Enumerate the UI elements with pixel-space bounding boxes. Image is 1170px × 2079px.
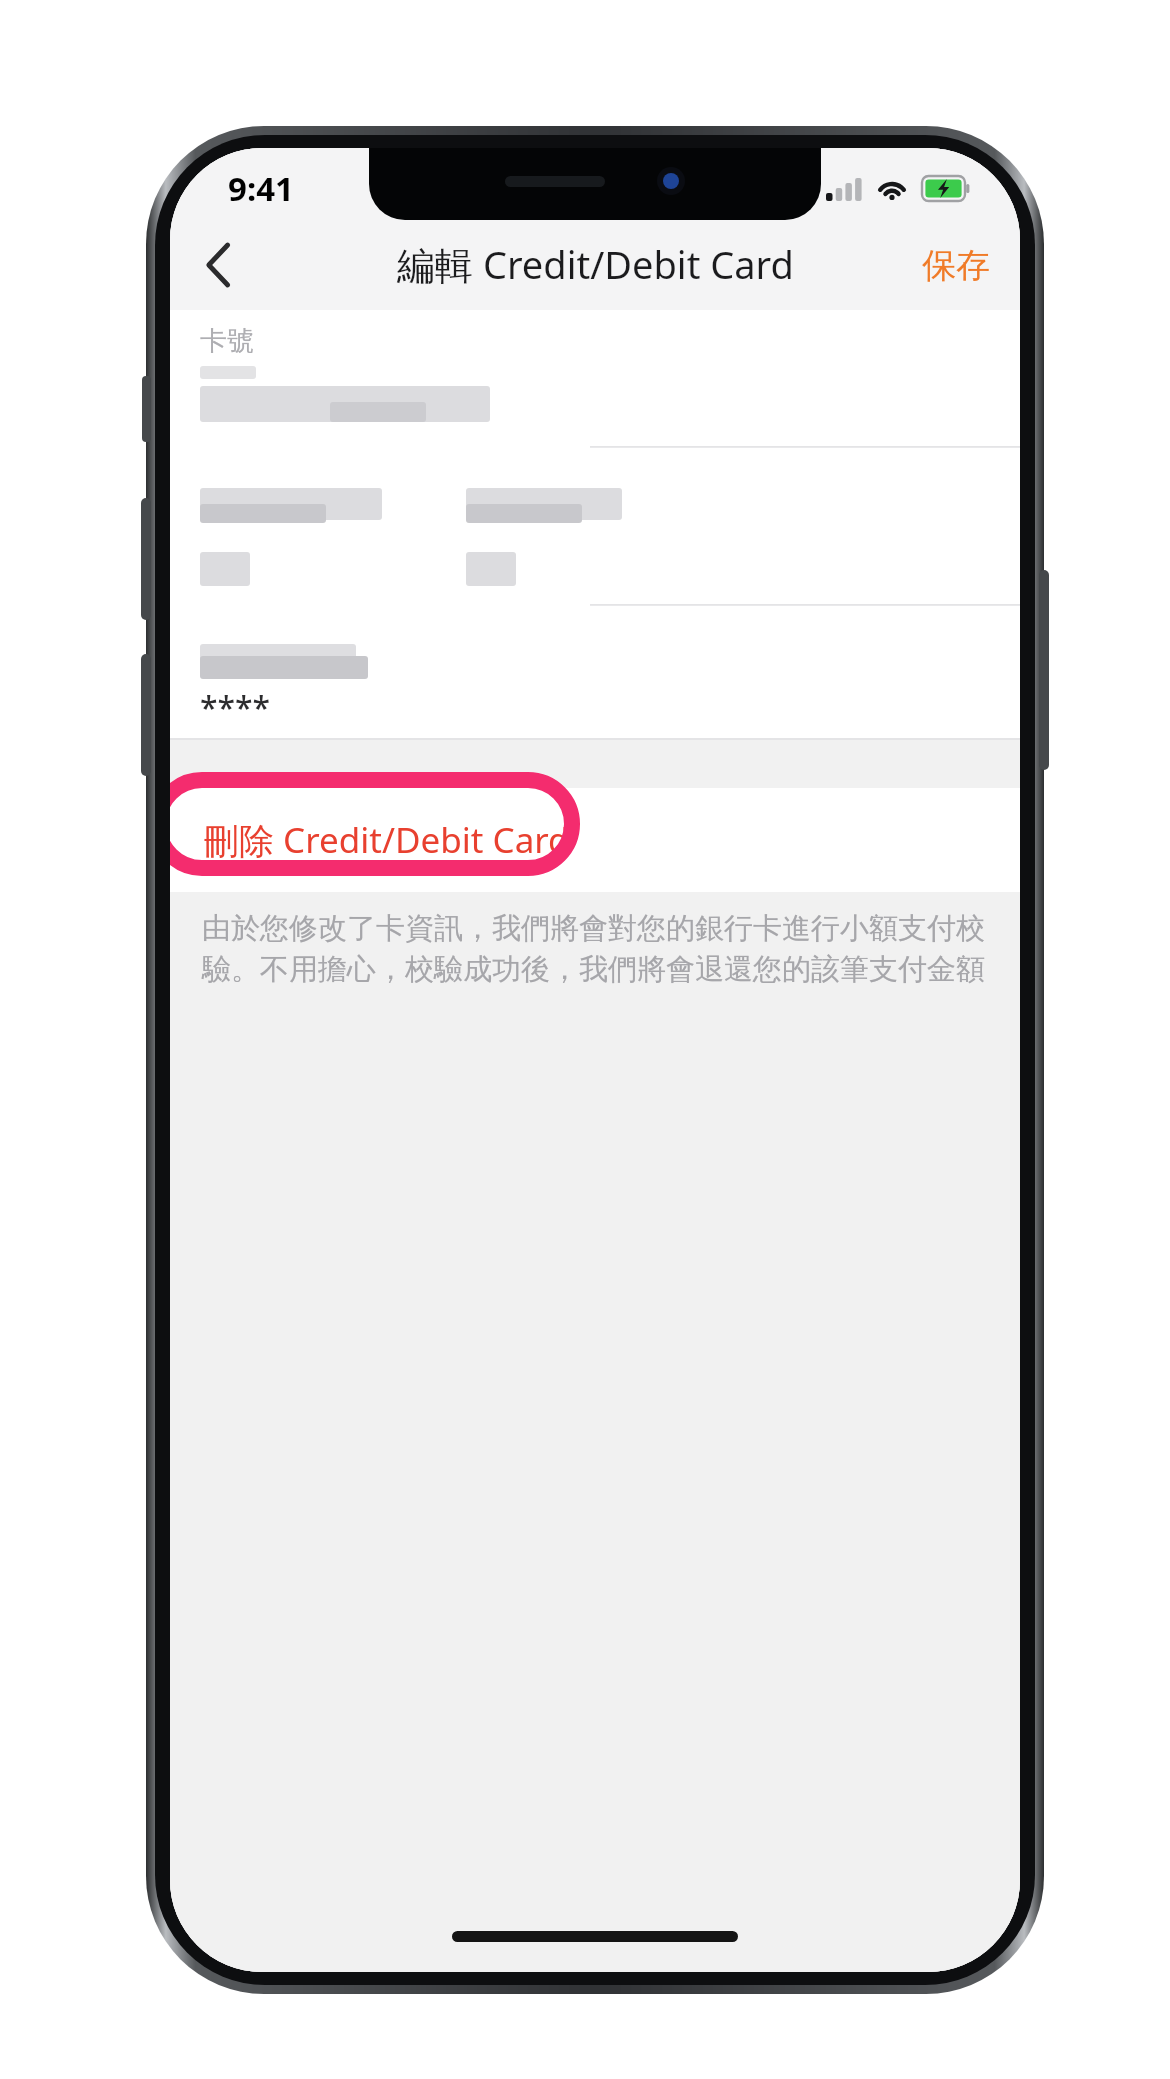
staticText: 卡號: [200, 324, 254, 358]
button[interactable]: 保存: [892, 220, 1020, 310]
staticText: 由於您修改了卡資訊，我們將會對您的銀行卡進行小額支付校驗。不用擔心，校驗成功後，…: [202, 910, 992, 987]
button[interactable]: 刪除 Credit/Debit Card: [170, 788, 1020, 892]
staticText: 刪除 Credit/Debit Card: [204, 816, 570, 864]
staticText: 編輯 Credit/Debit Card: [397, 238, 794, 290]
staticText: 保存: [922, 244, 990, 287]
button[interactable]: Back: [170, 220, 266, 310]
staticText: 9:41: [228, 166, 294, 211]
staticText: ****: [200, 686, 271, 730]
